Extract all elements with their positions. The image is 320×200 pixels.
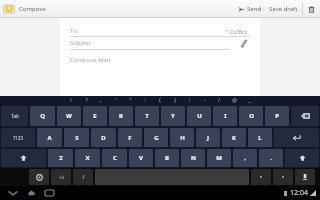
staticText: U	[197, 112, 202, 120]
staticText: P	[275, 112, 279, 120]
button[interactable]: M	[207, 149, 231, 167]
staticText: Send	[247, 5, 262, 13]
staticText: !	[70, 97, 72, 104]
staticText: Z	[59, 154, 63, 162]
button[interactable]: Shift	[1, 149, 46, 167]
button[interactable]: H	[170, 128, 194, 147]
button[interactable]: (	[155, 96, 165, 105]
button[interactable]: I	[213, 106, 237, 126]
button[interactable]: Emoji	[251, 169, 271, 185]
staticText: O	[249, 112, 254, 120]
staticText: V	[139, 154, 143, 162]
staticText: A	[47, 134, 52, 142]
staticText: "	[129, 97, 132, 104]
button[interactable]: O	[239, 106, 263, 126]
staticText: )	[174, 97, 176, 104]
button[interactable]: P	[265, 106, 289, 126]
button[interactable]: )	[170, 96, 180, 105]
button[interactable]: Save draft	[265, 0, 302, 18]
button[interactable]: C	[102, 149, 127, 167]
staticText: ;	[189, 97, 191, 104]
button[interactable]: U	[187, 106, 211, 126]
staticText: E	[93, 112, 97, 120]
button[interactable]: Tab	[1, 106, 28, 126]
button[interactable]: T	[135, 106, 159, 126]
button[interactable]: Attach file	[237, 39, 250, 48]
button[interactable]: B	[155, 149, 179, 167]
button[interactable]: ?123	[1, 128, 35, 147]
staticText: .	[270, 154, 272, 162]
button[interactable]: Recent apps	[40, 186, 58, 200]
button[interactable]: Y	[161, 106, 185, 126]
staticText: (	[159, 97, 161, 104]
staticText: +	[225, 27, 229, 35]
button[interactable]: ;	[185, 96, 195, 105]
staticText: Subject	[70, 39, 91, 47]
button[interactable]: R	[109, 106, 133, 126]
staticText: Compose	[19, 5, 46, 13]
button[interactable]: :	[140, 96, 150, 105]
button[interactable]: To:	[70, 25, 223, 36]
button[interactable]: L	[248, 128, 272, 147]
button[interactable]: Settings	[273, 169, 293, 185]
staticText: '	[115, 97, 117, 104]
staticText: D	[101, 134, 106, 142]
button[interactable]: Status	[284, 188, 320, 198]
button[interactable]: Keyboard settings	[29, 169, 49, 185]
button[interactable]: Z	[48, 149, 73, 167]
button[interactable]: Hide keyboard	[295, 169, 315, 185]
button[interactable]: E	[83, 106, 107, 126]
button[interactable]: Discard draft	[303, 0, 320, 18]
button[interactable]: Shift	[285, 149, 319, 167]
staticText: Q	[40, 112, 45, 120]
button[interactable]: Voice input	[51, 169, 71, 185]
button[interactable]: Home	[22, 186, 40, 200]
button[interactable]: -	[200, 96, 210, 105]
button[interactable]: ,	[233, 149, 257, 167]
staticText: I	[224, 112, 227, 120]
button[interactable]: ,	[96, 96, 106, 105]
button[interactable]: @	[229, 96, 239, 105]
button[interactable]: Enter	[274, 128, 319, 147]
staticText: C	[113, 154, 117, 162]
staticText: Save draft	[269, 5, 298, 13]
button[interactable]: Compose	[0, 0, 50, 18]
button[interactable]: Subject	[70, 37, 237, 49]
staticText: @	[232, 97, 237, 104]
button[interactable]: ?	[81, 96, 91, 105]
button[interactable]: W	[57, 106, 81, 126]
button[interactable]: F	[118, 128, 142, 147]
staticText: 12:04	[290, 188, 308, 198]
button[interactable]: X	[75, 149, 100, 167]
staticText: _	[248, 97, 251, 104]
button[interactable]: G	[144, 128, 168, 147]
button[interactable]: !	[66, 96, 76, 105]
staticText: -	[204, 97, 206, 104]
button[interactable]: N	[181, 149, 205, 167]
button[interactable]: A	[37, 128, 62, 147]
staticText: S	[75, 134, 79, 142]
staticText: N	[191, 154, 196, 162]
button[interactable]: _	[244, 96, 254, 105]
button[interactable]: Back	[4, 186, 22, 200]
staticText: /	[82, 173, 85, 181]
button[interactable]: '	[111, 96, 121, 105]
button[interactable]: J	[196, 128, 220, 147]
button[interactable]: D	[91, 128, 116, 147]
button[interactable]: +	[223, 27, 250, 35]
button[interactable]: .	[259, 149, 283, 167]
button[interactable]: Compose Mail	[70, 56, 250, 96]
button[interactable]: S	[64, 128, 89, 147]
button[interactable]: V	[129, 149, 153, 167]
staticText: :	[144, 97, 146, 104]
button[interactable]: /	[73, 169, 93, 185]
staticText: G	[154, 134, 159, 142]
button[interactable]: /	[214, 96, 224, 105]
button[interactable]: K	[222, 128, 246, 147]
button[interactable]: "	[125, 96, 135, 105]
button[interactable]: Send	[235, 0, 265, 18]
button[interactable]: Backspace	[291, 106, 319, 126]
button[interactable]: Q	[30, 106, 55, 126]
staticText: Y	[171, 112, 175, 120]
